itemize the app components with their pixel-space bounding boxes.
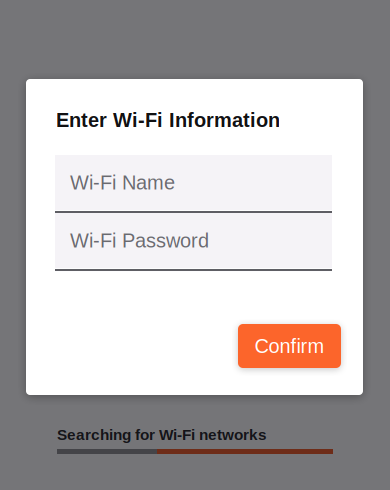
- staticText: Enter Wi-Fi Information: [56, 109, 280, 131]
- staticText: Wi-Fi Name: [70, 171, 175, 194]
- staticText: Searching for Wi-Fi networks: [57, 426, 267, 443]
- staticText: Wi-Fi Password: [70, 229, 209, 252]
- button[interactable]: Confirm: [238, 324, 341, 368]
- staticText: Confirm: [254, 335, 324, 357]
